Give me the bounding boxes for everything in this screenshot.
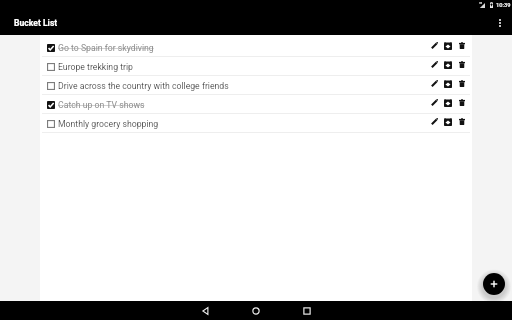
button[interactable]: Add reminder xyxy=(441,57,455,76)
button[interactable]: Europe trekking trip xyxy=(40,57,472,76)
staticText: Drive across the country with college fr… xyxy=(58,81,427,91)
button[interactable]: Edit xyxy=(427,95,441,114)
button[interactable]: Go to Spain for skydiving xyxy=(40,38,472,57)
staticText: Catch up on TV shows xyxy=(58,100,427,110)
button[interactable]: Delete xyxy=(455,76,469,95)
staticText: Go to Spain for skydiving xyxy=(58,43,427,53)
button[interactable]: Delete xyxy=(455,38,469,57)
staticText: Bucket List xyxy=(14,18,58,28)
button[interactable]: Edit xyxy=(427,114,441,133)
staticText: Monthly grocery shopping xyxy=(58,119,427,129)
button[interactable]: Add reminder xyxy=(441,95,455,114)
button[interactable]: Monthly grocery shopping xyxy=(40,114,472,133)
button[interactable]: Add reminder xyxy=(441,114,455,133)
button[interactable]: More options xyxy=(491,14,509,32)
button[interactable]: Back xyxy=(188,301,222,320)
button[interactable]: Drive across the country with college fr… xyxy=(40,76,472,95)
button[interactable]: Add item xyxy=(483,273,505,295)
button[interactable]: Add reminder xyxy=(441,38,455,57)
staticText: 10:39 xyxy=(496,2,511,9)
button[interactable]: Edit xyxy=(427,76,441,95)
button[interactable]: Delete xyxy=(455,57,469,76)
button[interactable]: Home xyxy=(239,301,273,320)
button[interactable]: Edit xyxy=(427,38,441,57)
button[interactable]: Delete xyxy=(455,114,469,133)
staticText: Europe trekking trip xyxy=(58,62,427,72)
button[interactable]: Edit xyxy=(427,57,441,76)
button[interactable]: Catch up on TV shows xyxy=(40,95,472,114)
button[interactable]: Recent apps xyxy=(290,301,324,320)
button[interactable]: Delete xyxy=(455,95,469,114)
button[interactable]: Add reminder xyxy=(441,76,455,95)
